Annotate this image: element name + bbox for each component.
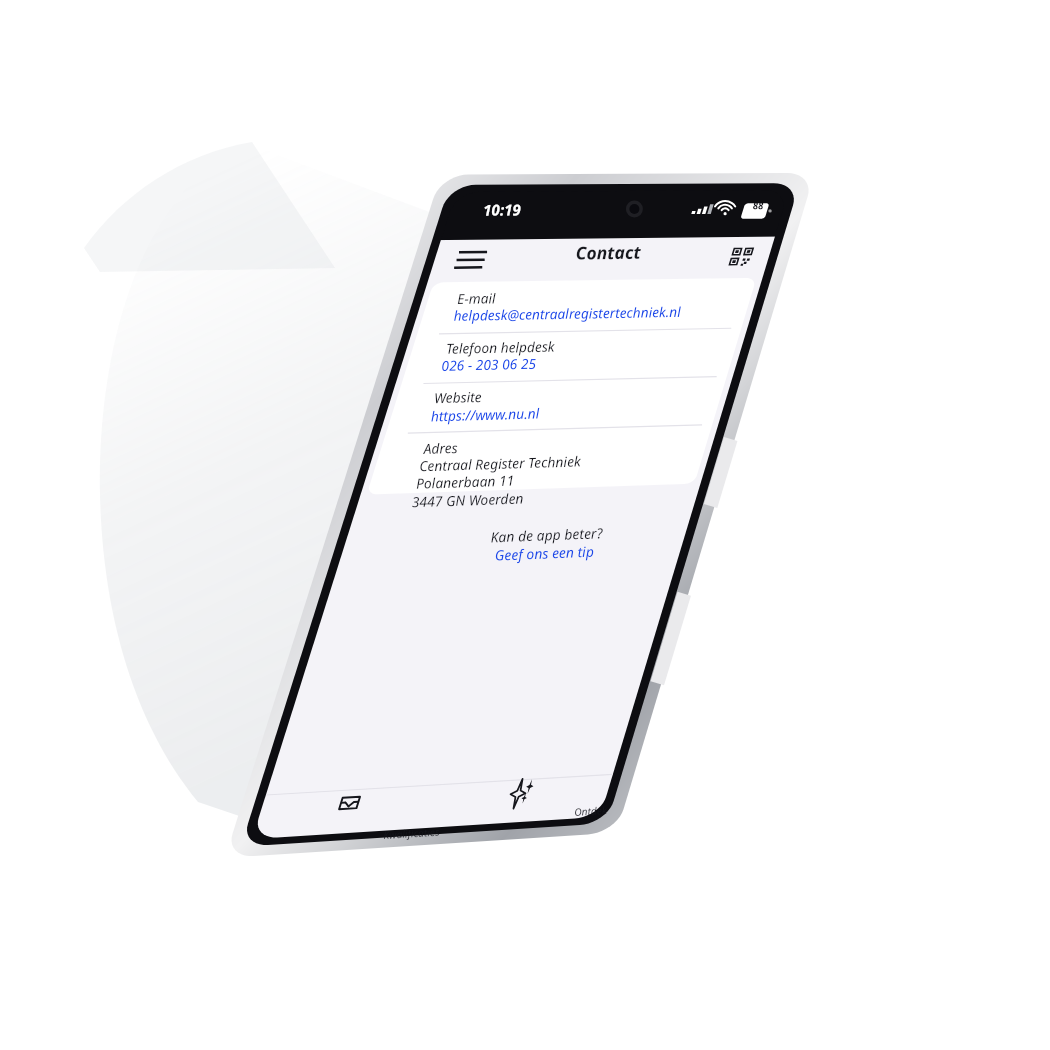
button[interactable]: Kwalificaties tab — [265, 795, 420, 853]
staticText: helpdesk@centraalregistertechniek.nl — [444, 307, 672, 330]
button[interactable]: Scan QR code — [737, 208, 795, 260]
staticText: 026 - 203 06 25 — [428, 359, 523, 380]
button[interactable] — [430, 540, 600, 570]
staticText: Kan de app beter? — [458, 528, 572, 551]
staticText: Polanerbaan 11 — [392, 474, 491, 496]
staticText: Contact — [570, 245, 635, 270]
staticText: Centraal Register Techniek — [397, 455, 559, 479]
staticText: 10:19 — [481, 203, 519, 223]
button[interactable] — [412, 317, 697, 369]
staticText: Ontdek — [500, 801, 534, 816]
button[interactable] — [425, 262, 710, 316]
staticText: E-mail — [449, 293, 487, 313]
button[interactable]: Ontdek tab — [442, 808, 582, 866]
staticText: Telefoon helpdesk — [434, 342, 543, 363]
staticText: Adres — [403, 442, 438, 462]
staticText: 88 — [750, 205, 761, 218]
staticText: 3447 GN Woerden — [386, 491, 499, 514]
staticText: https://www.nu.nl — [413, 408, 522, 430]
staticText: Website — [418, 392, 466, 412]
button[interactable] — [398, 367, 683, 419]
button[interactable]: Menu — [446, 198, 504, 242]
staticText: Geef ons een tip — [460, 546, 561, 569]
